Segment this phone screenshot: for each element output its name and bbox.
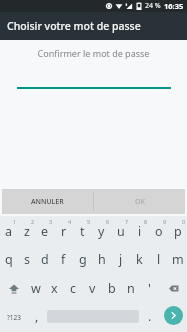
button[interactable]: a — [0, 216, 18, 245]
button[interactable]: b — [102, 274, 121, 303]
staticText: 5 — [87, 218, 91, 225]
staticText: t — [80, 223, 85, 240]
staticText: d — [41, 251, 49, 268]
staticText: k — [136, 251, 143, 268]
staticText: ANNULER — [31, 197, 64, 207]
staticText: b — [108, 280, 116, 297]
button[interactable]: ' — [140, 274, 159, 303]
staticText: u — [117, 223, 125, 240]
staticText: Confirmer le mot de passe — [0, 47, 187, 59]
staticText: e — [41, 223, 49, 240]
button[interactable]: z — [18, 216, 36, 245]
button[interactable]: s — [18, 245, 36, 274]
staticText: p — [174, 223, 182, 240]
staticText: o — [155, 223, 163, 240]
button[interactable]: u — [111, 216, 130, 245]
button[interactable]: l — [149, 245, 168, 274]
staticText: 0 — [182, 218, 186, 225]
staticText: v — [89, 280, 96, 297]
staticText: j — [119, 251, 123, 268]
staticText: q — [5, 251, 13, 268]
staticText: x — [51, 280, 58, 297]
button[interactable]: q — [0, 245, 18, 274]
button[interactable]: e — [36, 216, 54, 245]
staticText: ?123 — [7, 313, 21, 322]
button[interactable]: Backspace — [159, 274, 187, 303]
button[interactable]: d — [36, 245, 54, 274]
button[interactable]: Enter — [164, 306, 183, 325]
button[interactable]: y — [92, 216, 111, 245]
button[interactable]: j — [111, 245, 130, 274]
staticText: 16:35 — [164, 1, 184, 11]
button[interactable]: h — [92, 245, 111, 274]
button[interactable]: g — [73, 245, 92, 274]
staticText: s — [24, 251, 30, 268]
button[interactable]: ANNULER — [2, 189, 93, 214]
button[interactable]: i — [130, 216, 149, 245]
button[interactable]: OK — [94, 189, 185, 214]
staticText: . — [148, 308, 152, 325]
staticText: ' — [148, 280, 151, 297]
staticText: r — [61, 223, 67, 240]
button[interactable]: Shift — [0, 274, 27, 303]
button[interactable]: p — [168, 216, 187, 245]
button[interactable]: o — [149, 216, 168, 245]
staticText: OK — [135, 197, 145, 207]
staticText: h — [98, 251, 106, 268]
staticText: w — [31, 280, 41, 297]
staticText: y — [98, 223, 105, 240]
button[interactable]: w — [27, 274, 45, 303]
staticText: l — [157, 251, 161, 268]
button[interactable]: t — [73, 216, 92, 245]
staticText: 3 — [49, 218, 53, 225]
staticText: c — [70, 280, 77, 297]
button[interactable]: r — [54, 216, 73, 245]
staticText: 9 — [163, 218, 167, 225]
staticText: g — [79, 251, 87, 268]
staticText: 7 — [125, 218, 129, 225]
staticText: 2 — [31, 218, 35, 225]
staticText: Choisir votre mot de passe — [7, 19, 141, 33]
staticText: 1 — [13, 218, 17, 225]
staticText: 6 — [106, 218, 110, 225]
button[interactable]: . — [140, 303, 159, 332]
staticText: 24 % — [145, 1, 161, 11]
staticText: a — [5, 223, 13, 240]
staticText: f — [61, 251, 66, 268]
button[interactable]: ?123 — [0, 303, 27, 332]
staticText: n — [127, 280, 135, 297]
staticText: i — [138, 223, 142, 240]
button[interactable]: v — [83, 274, 102, 303]
button[interactable]: n — [121, 274, 140, 303]
button[interactable]: x — [45, 274, 64, 303]
staticText: z — [24, 223, 30, 240]
button[interactable]: f — [54, 245, 73, 274]
staticText: 4 — [68, 218, 72, 225]
staticText: , — [35, 308, 39, 325]
button[interactable]: m — [168, 245, 187, 274]
button[interactable]: , — [27, 303, 46, 332]
staticText: 8 — [144, 218, 148, 225]
button[interactable]: k — [130, 245, 149, 274]
staticText: m — [172, 251, 184, 268]
button[interactable]: c — [64, 274, 83, 303]
